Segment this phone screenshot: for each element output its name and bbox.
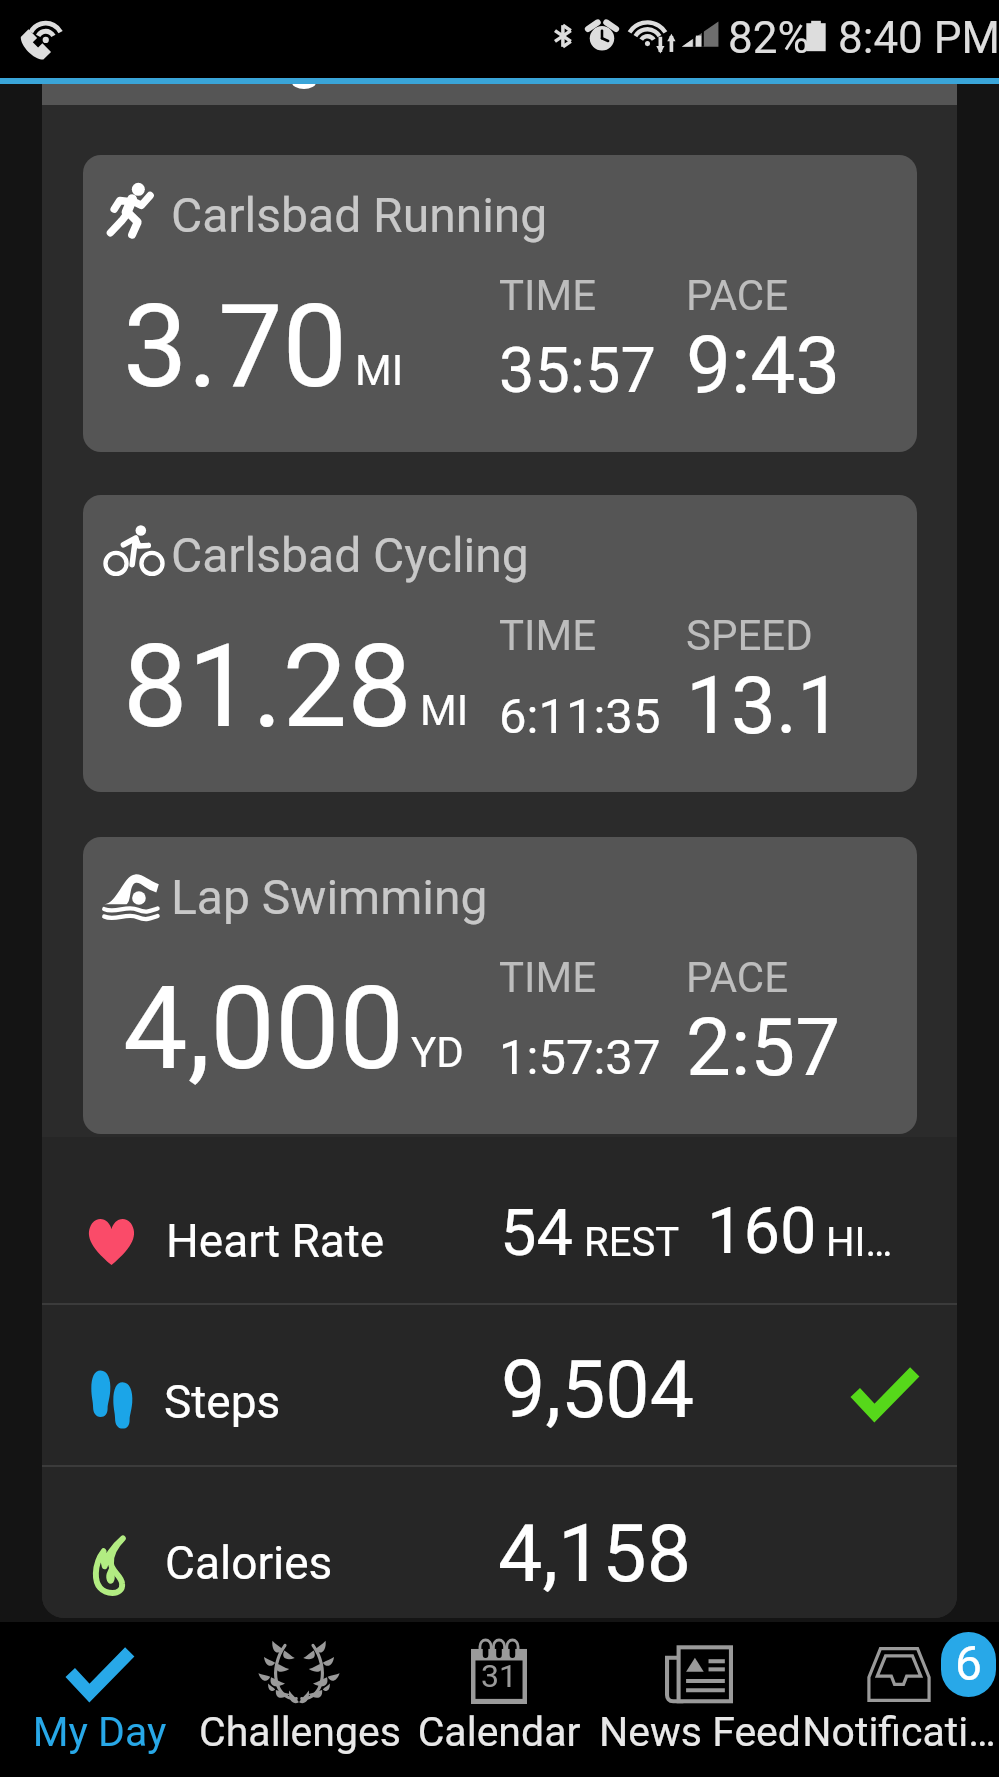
staticText: HI… bbox=[826, 1219, 893, 1266]
staticText: 35:57 bbox=[499, 334, 656, 408]
staticText: 1:57:37 bbox=[499, 1029, 661, 1086]
staticText: My Day bbox=[0, 1708, 199, 1756]
staticText: 160 bbox=[707, 1193, 817, 1269]
staticText: TIME bbox=[499, 271, 597, 320]
staticText: REST bbox=[584, 1219, 679, 1266]
staticText: Calories bbox=[165, 1536, 333, 1590]
button[interactable]: Carlsbad Cycling bbox=[83, 495, 917, 792]
staticText: PACE bbox=[686, 953, 789, 1002]
staticText: 3.70 bbox=[123, 279, 348, 414]
button[interactable]: News Feed bbox=[599, 1622, 799, 1777]
staticText: 4,158 bbox=[498, 1508, 692, 1601]
staticText: Notificati… bbox=[799, 1708, 999, 1756]
staticText: 6:11:35 bbox=[499, 688, 661, 745]
staticText: 54 bbox=[500, 1195, 574, 1271]
staticText: Carlsbad Running bbox=[171, 187, 548, 243]
staticText: TIME bbox=[499, 611, 597, 660]
button[interactable]: Heart Rate bbox=[42, 1137, 957, 1303]
staticText: 4,000 bbox=[123, 961, 405, 1096]
staticText: Challenges bbox=[199, 1708, 399, 1756]
button[interactable]: Steps bbox=[42, 1305, 957, 1465]
staticText: YD bbox=[411, 1028, 464, 1077]
button[interactable]: Challenges bbox=[199, 1622, 399, 1777]
staticText: 82% bbox=[728, 12, 810, 64]
button[interactable]: My Day bbox=[0, 1622, 199, 1777]
staticText: 2:57 bbox=[686, 1001, 841, 1095]
button[interactable]: Calories bbox=[42, 1467, 957, 1618]
staticText: News Feed bbox=[599, 1708, 799, 1756]
staticText: 13.1 bbox=[686, 659, 842, 753]
staticText: Lap Swimming bbox=[171, 869, 488, 925]
staticText: 31 bbox=[471, 1657, 527, 1695]
button[interactable]: Calendar bbox=[399, 1622, 599, 1777]
staticText: Carlsbad Cycling bbox=[171, 527, 529, 583]
staticText: Steps bbox=[164, 1375, 281, 1429]
staticText: PACE bbox=[686, 271, 789, 320]
staticText: 8:40 PM bbox=[838, 12, 999, 64]
staticText: MI bbox=[355, 346, 404, 395]
staticText: SPEED bbox=[686, 611, 813, 660]
button[interactable]: Notifications bbox=[799, 1622, 999, 1777]
staticText: MI bbox=[420, 686, 469, 735]
staticText: 6 bbox=[955, 1635, 982, 1691]
button[interactable]: Lap Swimming bbox=[83, 837, 917, 1134]
button[interactable]: Carlsbad Running bbox=[83, 155, 917, 452]
staticText: TIME bbox=[499, 953, 597, 1002]
staticText: Heart Rate bbox=[166, 1214, 385, 1268]
staticText: 9:43 bbox=[686, 319, 841, 413]
staticText: 81.28 bbox=[123, 619, 412, 754]
staticText: 9,504 bbox=[501, 1344, 695, 1437]
staticText: Calendar bbox=[399, 1708, 599, 1756]
